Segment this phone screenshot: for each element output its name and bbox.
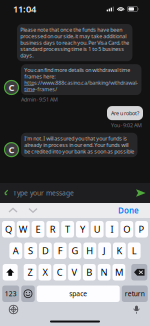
button[interactable]: U xyxy=(91,221,104,237)
staticText: J xyxy=(103,245,106,257)
button[interactable]: E xyxy=(32,221,44,237)
button[interactable]: J xyxy=(98,242,111,259)
button[interactable]: Previous field xyxy=(3,203,23,218)
button[interactable]: P xyxy=(135,221,148,237)
staticText: You can find more details on withdrawal … xyxy=(24,66,130,74)
staticText: 123 xyxy=(5,289,17,298)
staticText: You · 9:02 AM xyxy=(111,122,142,129)
button[interactable]: M xyxy=(112,264,125,280)
staticText: G xyxy=(71,245,78,257)
button[interactable]: N xyxy=(98,264,110,280)
staticText: N xyxy=(101,266,108,278)
button[interactable]: Emoji xyxy=(21,285,35,302)
staticText: 11:04 xyxy=(13,3,36,15)
staticText: https://www.888casino.ca/banking/withdra… xyxy=(24,79,138,86)
button[interactable]: 123 xyxy=(2,285,19,302)
staticText: frames here: xyxy=(24,73,55,80)
button[interactable]: V xyxy=(68,264,81,280)
staticText: S xyxy=(28,245,33,257)
button[interactable]: Delete xyxy=(131,264,147,280)
button[interactable]: Shift xyxy=(3,264,18,280)
staticText: be credited into your bank as soon as po… xyxy=(24,148,134,155)
staticText: B xyxy=(86,266,92,278)
button[interactable]: I xyxy=(106,221,118,237)
staticText: R xyxy=(50,223,56,235)
button[interactable]: A xyxy=(9,242,22,259)
staticText: X xyxy=(42,266,47,278)
staticText: Q xyxy=(5,223,12,235)
staticText: Please note that once the funds have bee… xyxy=(20,26,122,33)
staticText: T xyxy=(65,223,70,235)
staticText: O xyxy=(123,223,130,235)
button[interactable]: Next keyboard xyxy=(5,302,22,317)
staticText: I xyxy=(110,223,113,235)
staticText: D xyxy=(42,245,49,257)
button[interactable]: Q xyxy=(2,221,15,237)
button[interactable]: Y xyxy=(76,221,89,237)
button[interactable]: H xyxy=(83,242,96,259)
button[interactable]: Next field xyxy=(23,203,43,218)
staticText: space xyxy=(69,289,87,298)
staticText: U xyxy=(94,223,101,235)
button[interactable]: Dictate xyxy=(129,302,144,317)
staticText: processed on our side, it may take addit… xyxy=(20,33,126,40)
button[interactable]: space xyxy=(37,285,120,302)
staticText: P xyxy=(139,223,145,235)
staticText: H xyxy=(86,245,93,257)
button[interactable]: F xyxy=(54,242,67,259)
button[interactable]: S xyxy=(24,242,37,259)
button[interactable]: K xyxy=(113,242,126,259)
button[interactable]: T xyxy=(61,221,74,237)
staticText: M xyxy=(115,266,123,278)
button[interactable]: G xyxy=(69,242,81,259)
button[interactable]: return xyxy=(122,285,148,302)
button[interactable]: L xyxy=(128,242,141,259)
staticText: C xyxy=(57,266,63,278)
button[interactable]: R xyxy=(46,221,59,237)
staticText: days. xyxy=(20,52,33,59)
button[interactable]: Attach file xyxy=(0,184,13,201)
staticText: Are u robot? xyxy=(111,110,139,117)
staticText: Z xyxy=(28,266,33,278)
staticText: C xyxy=(8,81,14,94)
button[interactable]: D xyxy=(39,242,52,259)
button[interactable]: Send xyxy=(131,185,150,201)
staticText: F xyxy=(58,245,63,257)
staticText: time-frames/ xyxy=(24,86,57,93)
staticText: standard processing time is 1 to 5 busin… xyxy=(20,45,124,53)
button[interactable]: C xyxy=(53,264,66,280)
staticText: W xyxy=(19,223,28,235)
staticText: business days to reach you. Per Visa Car… xyxy=(20,39,129,46)
staticText: A xyxy=(13,245,19,257)
button[interactable]: Done xyxy=(112,201,145,220)
button[interactable]: W xyxy=(17,221,30,237)
staticText: I'm not. I will assured you that your fu… xyxy=(24,135,127,142)
button[interactable]: X xyxy=(38,264,51,280)
staticText: E xyxy=(35,223,40,235)
staticText: C xyxy=(8,143,14,156)
staticText: Done xyxy=(118,205,139,216)
staticText: Admin · 9:51 AM xyxy=(21,96,58,103)
staticText: return xyxy=(125,289,145,298)
staticText: V xyxy=(71,266,77,278)
staticText: Y xyxy=(80,223,85,235)
staticText: K xyxy=(116,245,122,257)
staticText: already in process in our end. Your fund… xyxy=(24,141,128,148)
button[interactable]: B xyxy=(83,264,96,280)
staticText: Type your message xyxy=(13,189,74,197)
staticText: L xyxy=(132,245,137,257)
button[interactable]: O xyxy=(120,221,133,237)
button[interactable]: Z xyxy=(24,264,36,280)
